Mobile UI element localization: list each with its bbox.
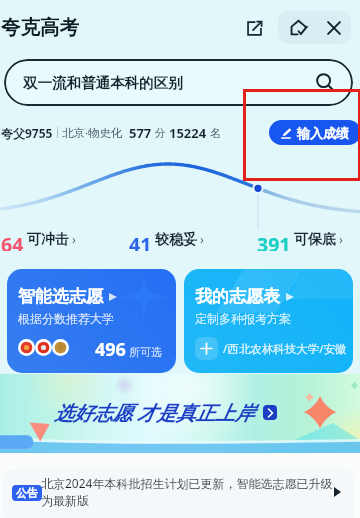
staticText: 根据分数推荐大学	[18, 311, 114, 326]
button[interactable]: 64	[1, 231, 76, 251]
button[interactable]: 输入成绩	[269, 120, 360, 145]
staticText: 北京·物史化	[62, 125, 123, 141]
staticText: /西北农林科技大学/安徽	[223, 341, 347, 357]
button[interactable]: 公告	[3, 469, 354, 518]
staticText: 分	[152, 125, 169, 140]
staticText: 可冲击	[27, 231, 69, 249]
button[interactable]: Close	[317, 11, 350, 44]
staticText: 公告	[16, 486, 38, 500]
staticText: 我的志愿表	[195, 286, 280, 307]
button[interactable]: 41	[129, 231, 204, 251]
button[interactable]: 夸克高考	[1, 12, 79, 42]
staticText: 夸克高考	[1, 15, 79, 40]
staticText: 496	[95, 337, 126, 362]
staticText: 所可选	[129, 345, 162, 359]
staticText: 15224	[169, 124, 207, 142]
staticText: 北京2024年本科批招生计划已更新，智能选志愿已升级	[41, 475, 333, 491]
staticText: 名	[207, 125, 221, 140]
staticText: 输入成绩	[297, 125, 349, 141]
staticText: 智能选志愿	[18, 286, 103, 307]
button[interactable]: 双一流和普通本科的区别	[4, 59, 353, 106]
button[interactable]: Open in browser	[241, 15, 267, 41]
button[interactable]: 选好志愿 才是真正上岸	[0, 374, 360, 453]
staticText: 391	[257, 231, 291, 251]
staticText: 选好志愿 才是真正上岸	[54, 399, 255, 426]
staticText: 可保底	[294, 231, 336, 249]
button[interactable]: Home	[282, 11, 315, 44]
staticText: 为最新版	[41, 493, 89, 508]
staticText: 较稳妥	[155, 231, 197, 249]
button[interactable]: 391	[257, 231, 343, 251]
staticText: ›	[339, 231, 343, 248]
staticText: 64	[1, 231, 24, 251]
staticText: ›	[72, 231, 76, 248]
staticText: 双一流和普通本科的区别	[23, 74, 183, 92]
button[interactable]: 我的志愿表	[184, 269, 353, 373]
staticText: 577	[129, 124, 152, 142]
button[interactable]: 智能选志愿	[7, 269, 176, 373]
staticText: 定制多种报考方案	[195, 311, 291, 326]
staticText: 41	[129, 231, 152, 251]
staticText: 夸父9755	[1, 125, 53, 141]
staticText: ›	[200, 231, 204, 248]
